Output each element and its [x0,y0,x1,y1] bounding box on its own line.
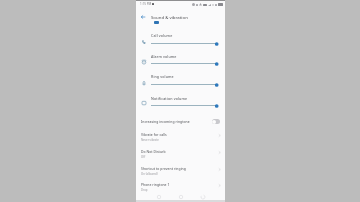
button[interactable]: Alarm volume [136,54,225,72]
staticText: Call volume [151,33,173,38]
staticText: Alarm volume [151,54,177,59]
button[interactable]: Vibrate for calls [136,131,225,147]
staticText: Notification volume [151,96,188,101]
staticText: Vibrate for calls [141,132,167,137]
button[interactable]: Shortcut to prevent ringing [136,165,225,181]
button[interactable]: Call volume [136,33,225,51]
button[interactable]: Notification volume [136,96,225,114]
staticText: Do Not Disturb [141,149,166,154]
staticText: Increasing incoming ringtone [141,119,190,124]
button[interactable]: Phone ringtone 1 [136,181,225,197]
button[interactable]: Back [138,12,147,21]
staticText: 1:15 PM [140,2,152,6]
staticText: On (allowed) [141,172,158,176]
staticText: Shortcut to prevent ringing [141,166,186,171]
staticText: Drop [141,188,148,192]
staticText: Phone ringtone 1 [141,182,170,187]
button[interactable]: Do Not Disturb [136,148,225,164]
staticText: Off [141,155,146,159]
button[interactable]: Home [177,193,184,200]
button[interactable]: Recent apps [155,193,162,200]
button[interactable]: Back [199,193,206,200]
staticText: Ring volume [151,74,174,79]
button[interactable]: Ring volume [136,74,225,92]
staticText: Sound & vibration [151,14,188,20]
button[interactable]: Increasing incoming ringtone [136,116,225,129]
staticText: Never vibrate [141,138,159,142]
